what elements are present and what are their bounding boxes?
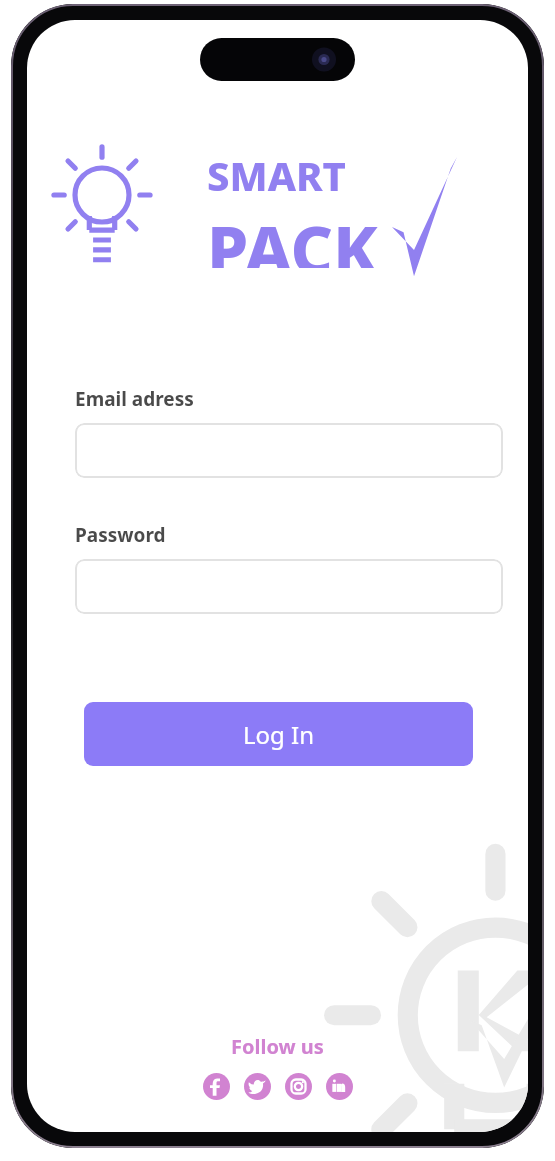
button[interactable]: Instagram — [285, 1073, 312, 1100]
staticText: Email adress — [75, 386, 194, 412]
button[interactable] — [75, 559, 503, 614]
staticText: Password — [75, 522, 166, 548]
button[interactable]: Facebook — [203, 1073, 230, 1100]
button[interactable]: LinkedIn — [326, 1073, 353, 1100]
button[interactable] — [75, 423, 503, 478]
button[interactable]: Log In — [84, 702, 473, 766]
button[interactable]: Twitter — [244, 1073, 271, 1100]
staticText: Follow us — [231, 1033, 324, 1060]
staticText: PACK — [207, 203, 378, 268]
staticText: SMART — [207, 148, 346, 202]
staticText: Log In — [243, 718, 315, 751]
